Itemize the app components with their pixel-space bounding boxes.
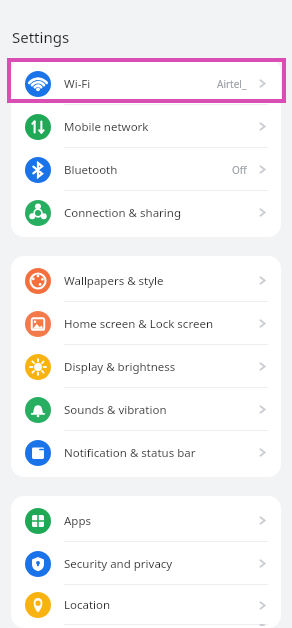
button[interactable]: Apps <box>11 499 281 542</box>
button[interactable]: Connection & sharing <box>11 191 281 234</box>
staticText: Sounds & vibration <box>64 402 167 418</box>
button[interactable]: Security and privacy <box>11 542 281 585</box>
staticText: Settings <box>12 27 70 47</box>
staticText: Airtel_ <box>217 77 247 91</box>
staticText: Security and privacy <box>64 556 173 572</box>
staticText: Apps <box>64 513 92 529</box>
button[interactable]: Home screen & Lock screen <box>11 302 281 345</box>
staticText: Bluetooth <box>64 162 118 178</box>
staticText: Off <box>232 163 247 177</box>
button[interactable]: Location <box>11 585 281 625</box>
button[interactable]: Display & brightness <box>11 345 281 388</box>
button[interactable]: Sounds & vibration <box>11 388 281 431</box>
button[interactable]: Bluetooth <box>11 148 281 191</box>
button[interactable]: Mobile network <box>11 105 281 148</box>
button[interactable]: Wallpapers & style <box>11 259 281 302</box>
staticText: Location <box>64 597 111 613</box>
button[interactable]: Wi-Fi <box>11 62 281 105</box>
button[interactable]: Notification & status bar <box>11 431 281 474</box>
staticText: Display & brightness <box>64 359 176 375</box>
staticText: Notification & status bar <box>64 445 196 461</box>
staticText: Home screen & Lock screen <box>64 316 213 332</box>
staticText: Mobile network <box>64 119 149 135</box>
staticText: Connection & sharing <box>64 205 181 221</box>
staticText: Wallpapers & style <box>64 273 164 289</box>
staticText: Wi-Fi <box>64 76 91 92</box>
